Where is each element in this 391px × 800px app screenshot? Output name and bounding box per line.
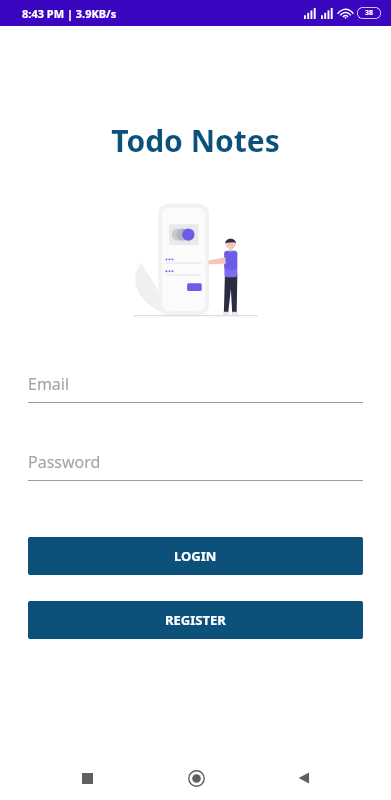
button[interactable]: Back <box>282 756 326 800</box>
staticText: Password <box>28 451 101 473</box>
button[interactable]: Password <box>28 451 363 481</box>
staticText: Email <box>28 373 70 395</box>
button[interactable]: REGISTER <box>28 601 363 639</box>
staticText: REGISTER <box>165 611 226 629</box>
staticText: 8:43 PM | 3.9KB/s <box>22 6 117 21</box>
button[interactable]: Home <box>174 756 218 800</box>
staticText: Todo Notes <box>0 120 391 161</box>
staticText: 38 <box>365 8 374 18</box>
button[interactable]: Recents <box>65 756 109 800</box>
staticText: LOGIN <box>174 547 217 565</box>
button[interactable]: Email <box>28 373 363 403</box>
button[interactable]: LOGIN <box>28 537 363 575</box>
